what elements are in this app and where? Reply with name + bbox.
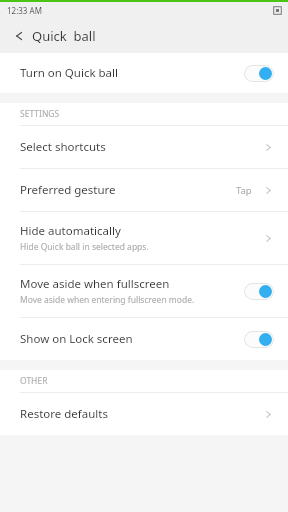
staticText: Hide automatically [20,223,121,239]
staticText: Tap [236,184,252,197]
staticText: Preferred gesture [20,182,116,198]
button[interactable]: Select shortcuts [0,126,288,168]
staticText: Show on Lock screen [20,331,133,347]
button[interactable]: On [244,331,274,348]
staticText: Turn on Quick ball [20,65,118,81]
button[interactable]: Show on Lock screen [0,318,288,360]
button[interactable]: On [244,65,274,82]
button[interactable]: Preferred gesture [0,169,288,211]
staticText: Quick ball [32,27,96,45]
button[interactable]: Turn on Quick ball [0,53,288,93]
button[interactable]: On [244,283,274,300]
staticText: Restore defaults [20,406,108,422]
staticText: 12:33 AM [7,5,42,16]
button[interactable]: Hide automatically [0,212,288,264]
staticText: SETTINGS [20,108,60,120]
staticText: Move aside when entering fullscreen mode… [20,294,195,306]
button[interactable]: Move aside when fullscreen [0,265,288,317]
other: Status icon [273,6,282,15]
staticText: Hide Quick ball in selected apps. [20,241,149,253]
staticText: OTHER [20,375,48,387]
button[interactable]: Restore defaults [0,393,288,435]
staticText: Select shortcuts [20,139,106,155]
button[interactable]: Back [8,25,30,47]
staticText: Move aside when fullscreen [20,276,170,292]
